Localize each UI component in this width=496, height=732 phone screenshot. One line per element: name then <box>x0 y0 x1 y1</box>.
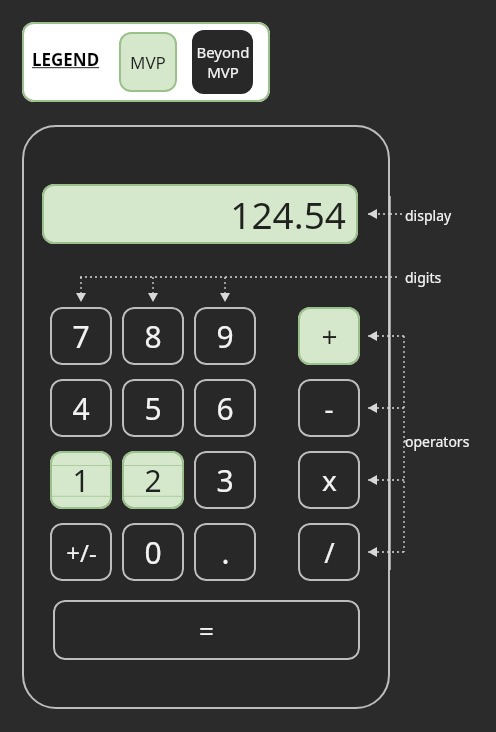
staticText: 4 <box>72 388 90 429</box>
staticText: +/- <box>66 536 97 569</box>
button[interactable]: / <box>298 523 360 581</box>
button[interactable]: 7 <box>50 307 112 365</box>
button[interactable]: Beyond MVP <box>192 30 253 94</box>
staticText: x <box>322 461 337 499</box>
button[interactable]: 5 <box>122 379 184 437</box>
staticText: 0 <box>144 532 162 573</box>
button[interactable]: = <box>53 600 360 660</box>
staticText: 5 <box>144 388 162 429</box>
button[interactable]: x <box>298 451 360 509</box>
staticText: + <box>321 317 338 355</box>
button[interactable]: 0 <box>122 523 184 581</box>
staticText: MVP <box>130 51 166 74</box>
button[interactable]: LEGEND <box>32 48 100 71</box>
button[interactable]: MVP <box>119 32 177 92</box>
staticText: operators <box>405 432 470 451</box>
staticText: 6 <box>216 388 234 429</box>
staticText: = <box>199 613 214 648</box>
button[interactable]: 2 <box>122 451 184 509</box>
button[interactable]: 124.54 <box>42 184 358 244</box>
staticText: 1 <box>72 460 90 501</box>
button[interactable]: 9 <box>194 307 256 365</box>
staticText: LEGEND <box>32 48 100 71</box>
staticText: display <box>405 206 452 225</box>
staticText: 8 <box>144 316 162 357</box>
button[interactable]: + <box>298 307 360 365</box>
staticText: - <box>324 389 334 427</box>
staticText: 2 <box>144 460 162 501</box>
button[interactable]: - <box>298 379 360 437</box>
staticText: 3 <box>216 460 234 501</box>
button[interactable]: 3 <box>194 451 256 509</box>
button[interactable]: 8 <box>122 307 184 365</box>
button[interactable]: 1 <box>50 451 112 509</box>
button[interactable]: +/- <box>50 523 112 581</box>
staticText: Beyond MVP <box>196 42 250 82</box>
staticText: 9 <box>216 316 234 357</box>
button[interactable]: 4 <box>50 379 112 437</box>
staticText: 124.54 <box>230 189 346 239</box>
staticText: 7 <box>72 316 90 357</box>
staticText: . <box>221 532 230 573</box>
button[interactable]: . <box>194 523 256 581</box>
staticText: digits <box>405 268 442 287</box>
button[interactable]: 6 <box>194 379 256 437</box>
staticText: / <box>324 533 335 571</box>
